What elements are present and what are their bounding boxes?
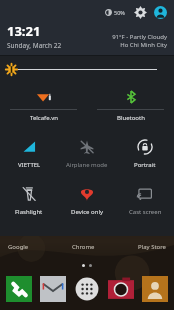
button[interactable]: Portrait [116, 131, 174, 178]
staticText: 13:21 [7, 22, 41, 40]
staticText: VIETTEL [18, 161, 41, 169]
staticText: Bluetooth [117, 114, 145, 122]
button[interactable]: Camera [108, 276, 134, 302]
staticText: Chrome [72, 243, 95, 251]
button[interactable]: VIETTEL [0, 131, 58, 178]
button[interactable]: Apps [74, 276, 100, 302]
button[interactable]: Flashlight [0, 178, 58, 225]
button[interactable]: 50% [103, 9, 127, 16]
staticText: Airplane mode [66, 161, 108, 169]
button[interactable]: Contacts [142, 276, 168, 302]
staticText: Device only [71, 208, 104, 216]
staticText: Portrait [134, 161, 156, 169]
staticText: Google [8, 243, 29, 251]
staticText: Play Store [138, 243, 166, 251]
button[interactable]: Bluetooth [87, 84, 174, 131]
button[interactable]: Brightness [0, 56, 174, 82]
button[interactable]: Phone [6, 276, 32, 302]
staticText: Cast screen [129, 208, 162, 216]
button[interactable]: Telcafe.vn [0, 84, 87, 131]
button[interactable]: Device only [58, 178, 116, 225]
button[interactable]: User profile [153, 5, 168, 20]
staticText: Sunday, March 22 [7, 41, 62, 50]
other: Brightness [6, 64, 17, 75]
staticText: 50% [114, 9, 125, 16]
button[interactable]: Messaging [40, 276, 66, 302]
staticText: Telcafe.vn [30, 114, 58, 122]
staticText: 91°F - Partly Cloudy [112, 33, 167, 41]
staticText: Ho Chi Minh City [120, 41, 167, 49]
button[interactable]: Airplane mode [58, 131, 116, 178]
staticText: Flashlight [15, 208, 43, 216]
button[interactable]: Cast screen [116, 178, 174, 225]
button[interactable]: Settings [133, 5, 148, 20]
